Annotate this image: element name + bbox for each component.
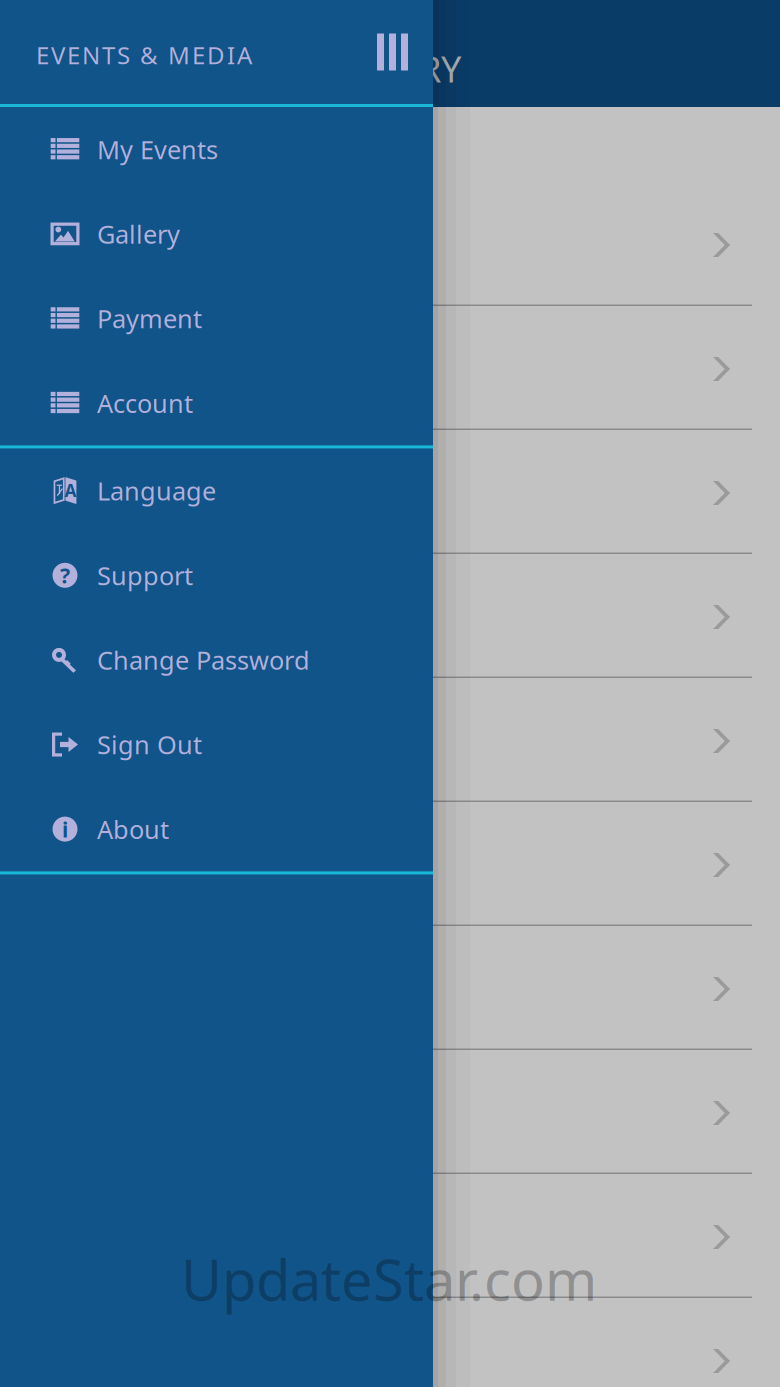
staticText: Payment	[97, 302, 202, 335]
button[interactable]: Account	[0, 361, 433, 445]
staticText: Account	[97, 386, 193, 420]
button[interactable]: Gallery	[0, 192, 433, 276]
button[interactable]	[0, 926, 780, 1050]
button[interactable]: ?	[0, 533, 433, 618]
staticText: i	[62, 815, 68, 843]
button[interactable]	[0, 107, 780, 306]
button[interactable]: Close menu	[370, 0, 415, 104]
button[interactable]: Payment	[0, 276, 433, 361]
staticText: Support	[97, 558, 193, 592]
button[interactable]: My Events	[0, 107, 433, 192]
staticText: A	[64, 479, 76, 502]
button[interactable]	[0, 430, 780, 554]
button[interactable]	[0, 1050, 780, 1174]
button[interactable]: Change Password	[0, 618, 433, 702]
staticText: E V E N T S & M E D I A	[36, 39, 252, 71]
staticText: Sign Out	[97, 728, 202, 761]
button[interactable]: Sign Out	[0, 702, 433, 787]
button[interactable]	[0, 678, 780, 802]
button[interactable]	[0, 306, 780, 430]
button[interactable]	[0, 1174, 780, 1298]
button[interactable]	[0, 802, 780, 926]
staticText: Change Password	[97, 643, 310, 677]
button[interactable]: i	[0, 787, 433, 871]
staticText: GALLERY	[312, 45, 461, 92]
staticText: About	[97, 812, 169, 846]
staticText: UpdateStar.com	[181, 1242, 597, 1316]
button[interactable]	[0, 1298, 780, 1387]
staticText: Language	[97, 474, 216, 507]
staticText: Gallery	[97, 217, 180, 251]
staticText: My Events	[97, 132, 218, 166]
button[interactable]	[0, 554, 780, 678]
staticText: ?	[60, 561, 70, 589]
button[interactable]: A	[0, 448, 433, 533]
